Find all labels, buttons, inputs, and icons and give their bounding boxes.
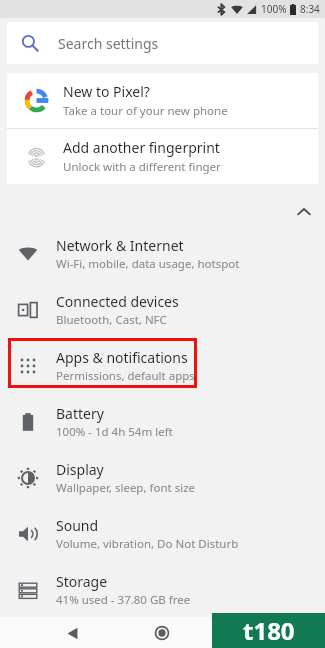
staticText: Volume, vibration, Do Not Disturb (56, 536, 239, 552)
staticText: Display (56, 460, 104, 479)
staticText: 41% used - 37.80 GB free (56, 592, 191, 608)
staticText: New to Pixel? (63, 82, 150, 101)
staticText: Add another fingerprint (63, 138, 220, 157)
staticText: Sound (56, 516, 99, 535)
staticText: Wi-Fi, mobile, data usage, hotspot (56, 256, 240, 272)
button[interactable]: Apps & notifications (0, 338, 325, 394)
staticText: Search settings (58, 34, 159, 53)
button[interactable]: New to Pixel? (7, 73, 318, 128)
button[interactable]: Home (148, 619, 176, 647)
staticText: Wallpaper, sleep, font size (56, 480, 196, 496)
button[interactable]: Connected devices (0, 282, 325, 338)
button[interactable]: Add another fingerprint (7, 129, 318, 184)
staticText: Battery (56, 404, 104, 423)
button[interactable]: Display (0, 450, 325, 506)
button[interactable]: Search settings (7, 22, 318, 64)
staticText: Apps & notifications (56, 348, 188, 367)
staticText: Storage (56, 572, 108, 591)
staticText: Permissions, default apps (56, 368, 195, 384)
button[interactable]: Collapse suggestions (0, 196, 325, 226)
staticText: Bluetooth, Cast, NFC (56, 312, 167, 328)
button[interactable]: Sound (0, 506, 325, 562)
staticText: 100% (261, 2, 287, 16)
button[interactable]: Battery (0, 394, 325, 450)
staticText: 100% - 1d 4h 54m left (56, 424, 173, 440)
staticText: Unlock with a different finger (63, 159, 221, 175)
staticText: Network & Internet (56, 236, 184, 255)
button[interactable]: Back (58, 619, 86, 647)
staticText: Take a tour of your new phone (63, 103, 228, 119)
button[interactable]: Network & Internet (0, 226, 325, 282)
button[interactable]: Storage (0, 562, 325, 618)
staticText: Connected devices (56, 292, 179, 311)
staticText: t180 (243, 614, 295, 647)
staticText: 8:34 (300, 2, 320, 16)
